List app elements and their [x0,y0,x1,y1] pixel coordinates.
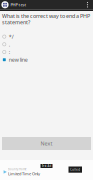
button[interactable]: */ [0,33,93,40]
staticText: new line [9,56,28,63]
staticText: Collect [70,168,80,171]
staticText: . [9,41,10,48]
staticText: Limited Time Only [8,171,40,176]
button[interactable]: More options [82,0,93,10]
button[interactable]: : [0,48,93,56]
staticText: Test Ad [41,164,51,168]
staticText: What is the correct way to end a PHP sta… [2,12,90,26]
staticText: */ [9,33,14,40]
staticText: PHP test [10,2,26,7]
button[interactable]: Collect [68,166,82,173]
staticText: : [9,48,10,56]
staticText: Bounty Home [8,167,27,171]
button[interactable]: Next [2,137,91,150]
button[interactable]: . [0,40,93,48]
button[interactable]: new line [0,56,93,64]
staticText: Next [40,140,52,147]
